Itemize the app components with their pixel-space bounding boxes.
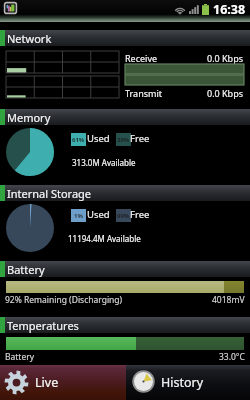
button[interactable]: Memory (0, 109, 250, 125)
staticText: Receive (125, 52, 158, 64)
staticText: Live (35, 374, 59, 391)
button[interactable]: Internal Storage (0, 185, 250, 201)
button[interactable]: History (126, 365, 250, 400)
staticText: Transmit (125, 87, 162, 99)
staticText: 16:38 (213, 1, 246, 18)
staticText: Temperatures (7, 318, 79, 333)
staticText: 313.0M Available (72, 157, 136, 168)
button[interactable]: Battery (0, 261, 250, 277)
staticText: Battery (7, 262, 45, 277)
staticText: Used (87, 132, 110, 145)
staticText: Used (87, 208, 110, 221)
staticText: History (161, 374, 204, 391)
staticText: 4018mV (212, 294, 245, 306)
staticText: 11194.4M Available (68, 233, 141, 244)
staticText: 92% Remaining (Discharging) (5, 294, 123, 306)
staticText: Battery (5, 351, 35, 363)
button[interactable]: Temperatures (0, 317, 250, 333)
staticText: Free (130, 208, 150, 221)
staticText: 0.0 Kbps (207, 52, 244, 64)
staticText: 39% (117, 136, 130, 144)
staticText: 99% (117, 212, 130, 220)
button[interactable]: Live (0, 365, 126, 400)
staticText: 61% (72, 136, 85, 144)
staticText: Internal Storage (7, 186, 92, 201)
staticText: 0.0 Kbps (207, 87, 244, 99)
staticText: 1% (74, 212, 83, 220)
staticText: Memory (7, 110, 51, 125)
staticText: 33.0°C (219, 351, 245, 363)
button[interactable]: Network (0, 30, 250, 46)
staticText: Free (130, 132, 150, 145)
staticText: Network (7, 31, 52, 46)
